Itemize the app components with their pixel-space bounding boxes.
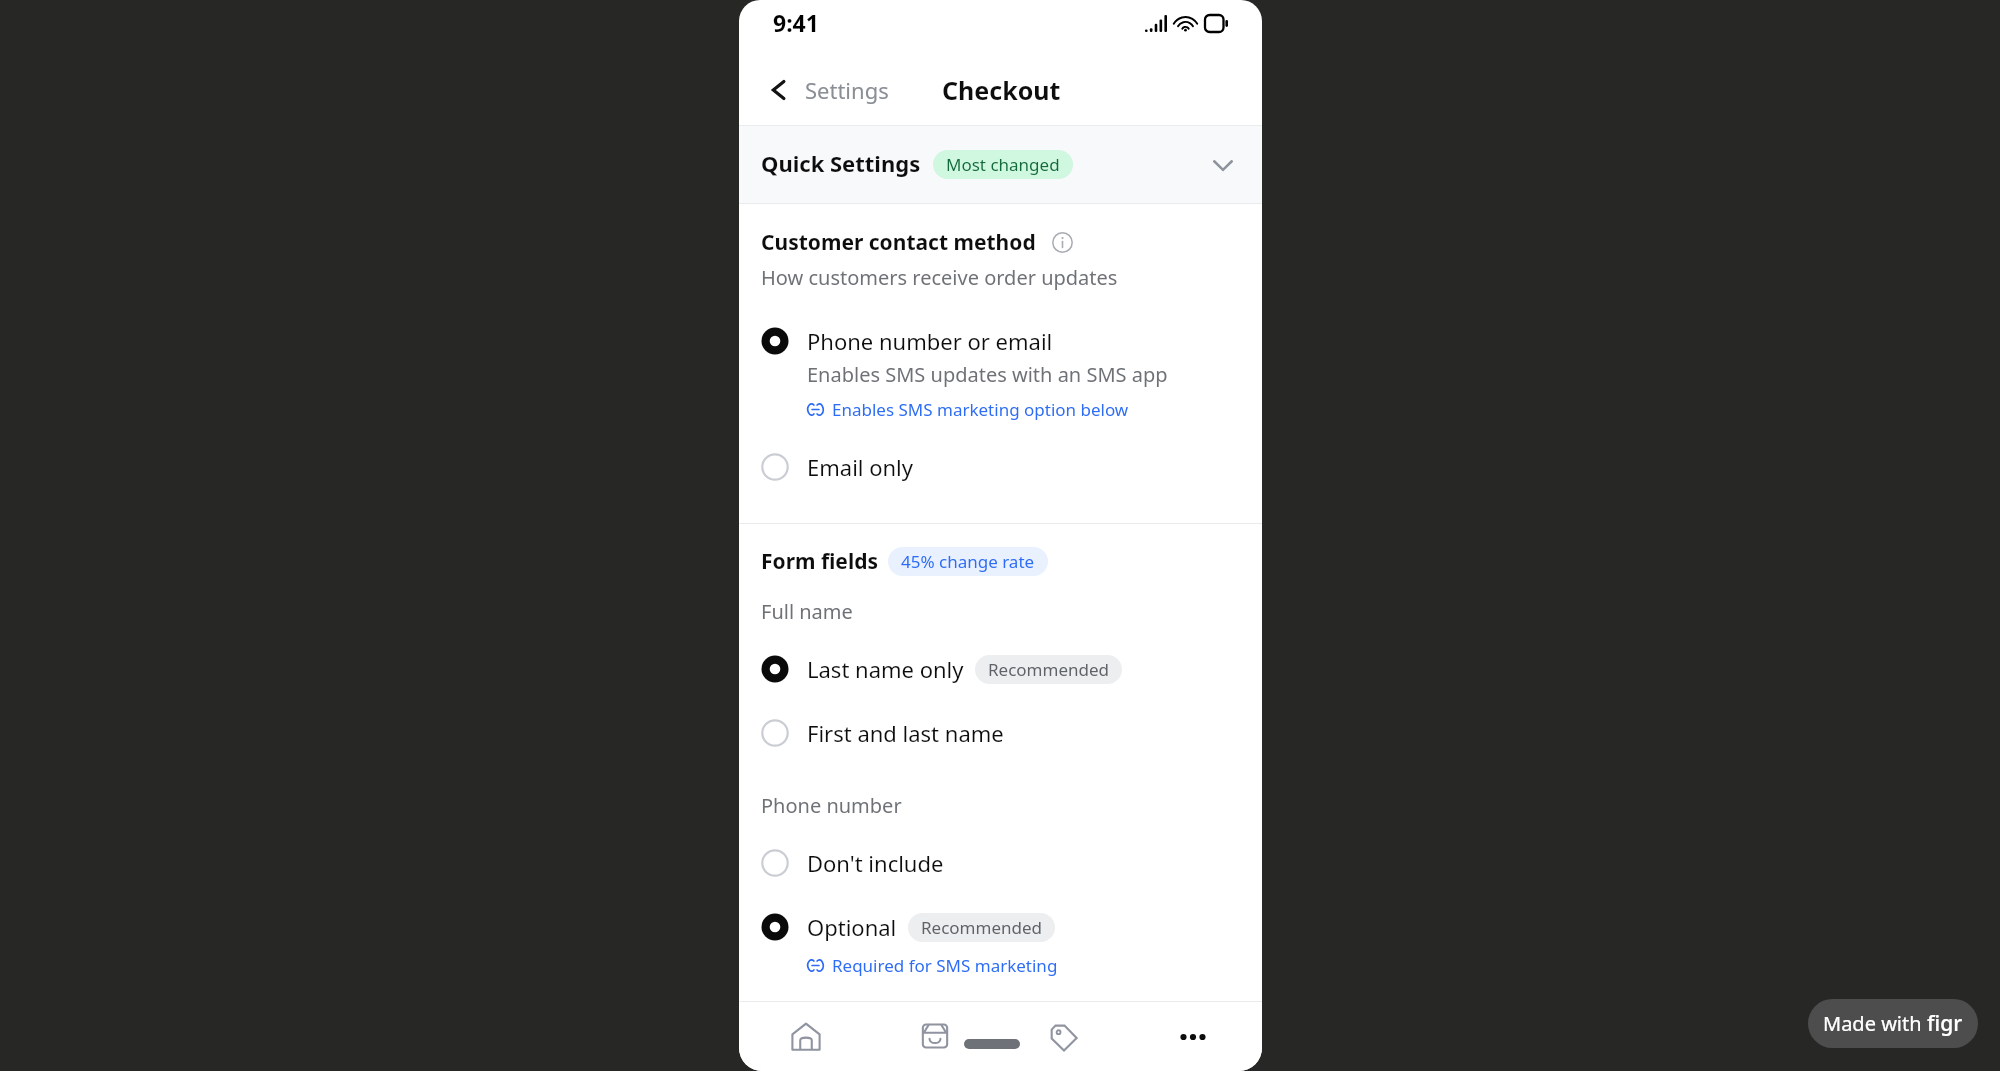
- staticText: Recommended: [988, 658, 1109, 681]
- staticText: Quick Settings: [761, 148, 921, 178]
- staticText: Don't include: [807, 848, 944, 878]
- staticText: Optional: [807, 912, 897, 942]
- button[interactable]: Home: [782, 1012, 830, 1060]
- staticText: Enables SMS updates with an SMS app: [807, 361, 1168, 388]
- button[interactable]: Phone number or email: [761, 326, 1240, 421]
- button[interactable]: Enables SMS marketing option below: [807, 398, 1129, 421]
- staticText: Settings: [805, 75, 889, 105]
- staticText: Full name: [761, 598, 853, 625]
- staticText: Most changed: [946, 153, 1060, 176]
- staticText: Email only: [807, 452, 914, 482]
- staticText: Made with: [1823, 1010, 1927, 1037]
- button[interactable]: Orders: [911, 1012, 959, 1060]
- other: Back: [769, 78, 793, 102]
- button[interactable]: Required for SMS marketing: [807, 954, 1058, 977]
- button[interactable]: More: [1169, 1012, 1217, 1060]
- button[interactable]: Last name only: [761, 654, 1240, 684]
- button[interactable]: First and last name: [761, 718, 1240, 748]
- staticText: First and last name: [807, 718, 1004, 748]
- staticText: Form fields: [761, 547, 878, 576]
- staticText: figr: [1927, 1009, 1963, 1038]
- staticText: How customers receive order updates: [761, 264, 1118, 291]
- staticText: Enables SMS marketing option below: [832, 398, 1129, 421]
- button[interactable]: Email only: [761, 452, 1240, 482]
- staticText: 45% change rate: [901, 550, 1035, 573]
- button[interactable]: Optional: [761, 912, 1240, 977]
- other: Expand: [1212, 154, 1234, 176]
- button[interactable]: Quick Settings: [739, 126, 1262, 203]
- staticText: Checkout: [942, 73, 1061, 107]
- staticText: 9:41: [773, 7, 819, 38]
- button[interactable]: Made with: [1808, 999, 1978, 1048]
- staticText: Customer contact method: [761, 228, 1036, 257]
- button[interactable]: Back: [759, 75, 897, 105]
- staticText: Required for SMS marketing: [832, 954, 1058, 977]
- staticText: Phone number: [761, 792, 902, 819]
- other: Info: [1052, 232, 1073, 253]
- staticText: Recommended: [921, 916, 1042, 939]
- staticText: Phone number or email: [807, 326, 1053, 356]
- button[interactable]: Products: [1040, 1012, 1088, 1060]
- staticText: Last name only: [807, 654, 964, 684]
- button[interactable]: Don't include: [761, 848, 1240, 878]
